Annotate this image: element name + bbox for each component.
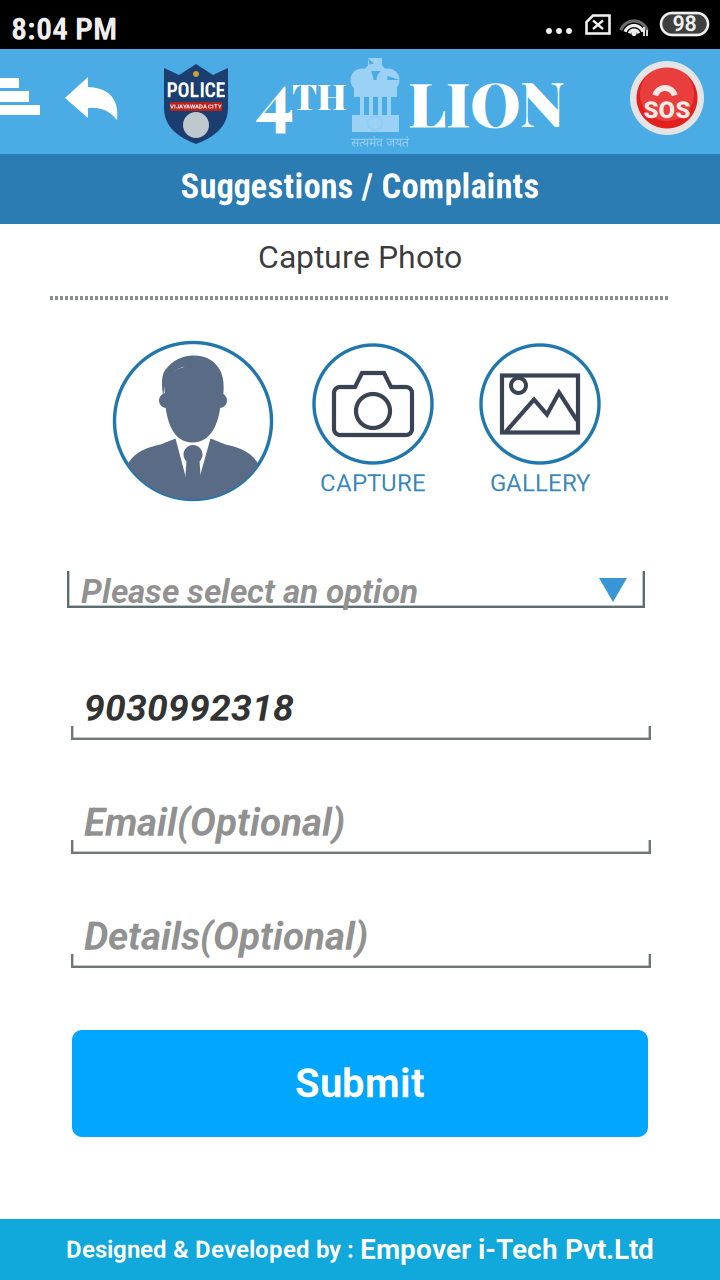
staticText: LION [408,61,565,143]
staticText: Details(Optional) [84,914,368,959]
staticText: TH [292,71,347,119]
staticText: GALLERY [490,469,590,497]
button[interactable]: CAPTURE [313,344,433,496]
staticText: Empover i-Tech Pvt.Ltd [360,1233,654,1266]
button[interactable]: Details(Optional) [71,910,651,968]
staticText: Submit [295,1060,425,1107]
staticText: 98 [672,11,696,36]
staticText: VIJAYAWADA CITY [170,103,222,110]
staticText: सत्यमेव जयते [351,134,409,150]
button[interactable]: Menu [0,78,40,115]
staticText: Suggestions / Complaints [180,166,539,207]
staticText: POLICE [166,79,225,102]
staticText: CAPTURE [320,469,426,497]
button[interactable]: Please select an option [67,571,645,608]
staticText: 9030992318 [84,686,294,730]
button[interactable]: Submit [72,1030,648,1137]
staticText: Designed & Developed by : [66,1235,360,1263]
button[interactable]: Back [65,77,119,120]
staticText: SOS [643,96,690,124]
button[interactable]: 9030992318 [71,682,651,740]
button[interactable]: SOS emergency call [630,61,704,135]
staticText: Email(Optional) [84,800,345,845]
button[interactable]: Email(Optional) [71,796,651,854]
button[interactable]: Photo preview [113,341,273,501]
staticText: 4 [256,49,294,141]
staticText: Capture Photo [258,238,462,276]
staticText: Please select an option [81,572,418,611]
staticText: 8:04 PM [11,10,117,47]
button[interactable]: GALLERY [480,344,600,496]
